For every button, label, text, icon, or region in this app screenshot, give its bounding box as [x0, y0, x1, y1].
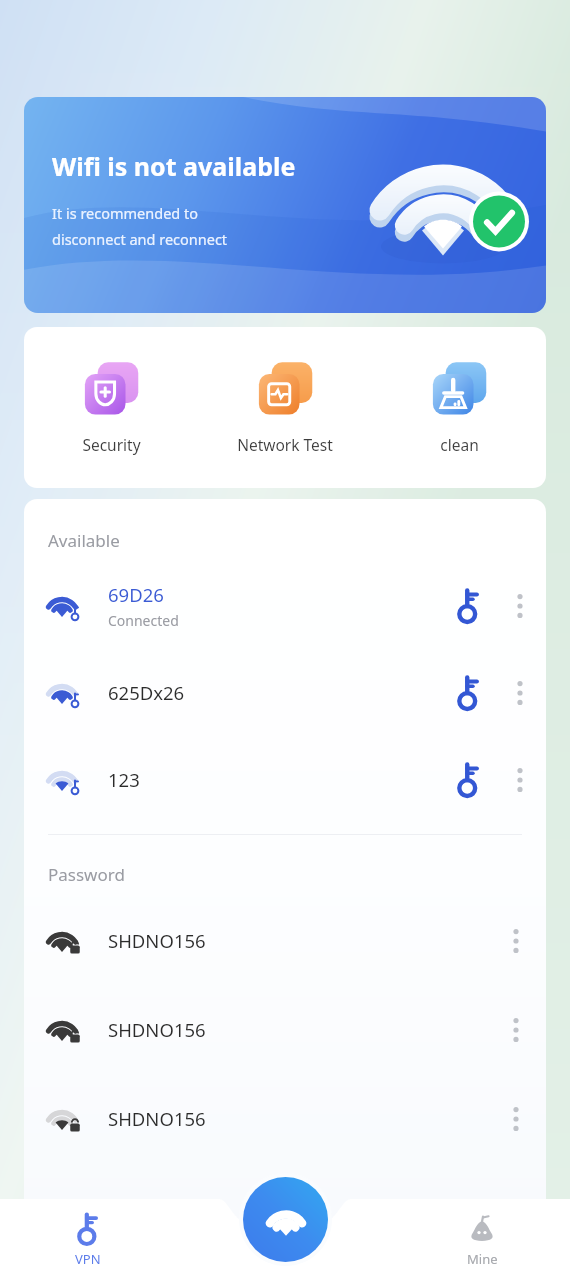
button[interactable]: Wifi is not available — [24, 97, 546, 313]
button[interactable]: More options — [498, 578, 542, 634]
staticText: 69D26 — [108, 582, 164, 607]
staticText: 123 — [108, 767, 140, 792]
button[interactable]: SHDNO156 — [24, 985, 546, 1074]
staticText: Wifi is not available — [52, 149, 296, 183]
button[interactable]: Security — [24, 352, 198, 463]
staticText: 625Dx26 — [108, 680, 185, 705]
staticText: Connected — [108, 611, 179, 630]
staticText: VPN — [75, 1250, 101, 1268]
staticText: Password — [48, 863, 125, 886]
button[interactable]: clean — [372, 352, 546, 463]
staticText: SHDNO156 — [108, 1106, 206, 1131]
button[interactable]: Network Test — [198, 352, 372, 463]
staticText: clean — [440, 434, 479, 455]
button[interactable]: 69D26 — [24, 562, 546, 649]
button[interactable]: SHDNO156 — [24, 1074, 546, 1163]
button[interactable]: SHDNO156 — [24, 896, 546, 985]
button[interactable]: Connect with VPN key — [446, 757, 492, 803]
staticText: SHDNO156 — [108, 928, 206, 953]
staticText: Mine — [467, 1250, 498, 1268]
button[interactable]: Connect with VPN key — [446, 583, 492, 629]
button[interactable]: 625Dx26 — [24, 649, 546, 736]
button[interactable]: More options — [494, 913, 538, 969]
staticText: Available — [48, 529, 120, 552]
staticText: Security — [82, 434, 141, 455]
staticText: SHDNO156 — [108, 1017, 206, 1042]
button[interactable]: 123 — [24, 736, 546, 823]
button[interactable]: Connect Wi-Fi — [243, 1177, 328, 1262]
button[interactable]: Connect with VPN key — [446, 670, 492, 716]
staticText: It is recommended to disconnect and reco… — [52, 203, 228, 249]
button[interactable]: More options — [494, 1002, 538, 1058]
staticText: Network Test — [237, 434, 333, 455]
button[interactable]: More options — [494, 1091, 538, 1147]
button[interactable]: More options — [498, 752, 542, 808]
button[interactable]: More options — [498, 665, 542, 721]
button[interactable]: Mine — [446, 1214, 518, 1280]
button[interactable]: VPN — [52, 1213, 124, 1280]
